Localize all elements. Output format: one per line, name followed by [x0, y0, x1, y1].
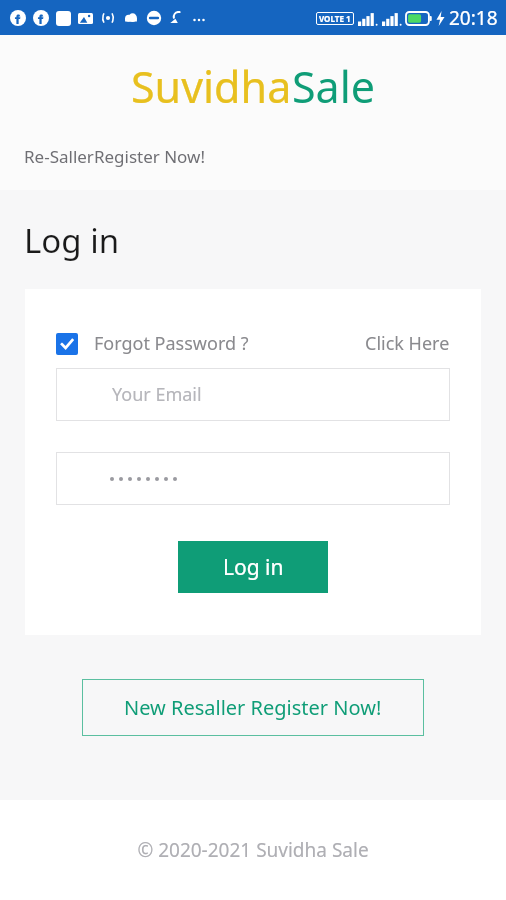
button[interactable]: New Resaller Register Now!: [82, 679, 424, 736]
staticText: Forgot Password ?: [94, 331, 249, 356]
staticText: Log in: [24, 218, 120, 263]
staticText: VOLTE 1: [319, 13, 351, 24]
button[interactable]: Log in: [178, 541, 328, 593]
staticText: Sale: [292, 57, 376, 116]
button[interactable]: Your Email: [56, 368, 450, 421]
button[interactable]: Suvidha: [131, 57, 376, 116]
staticText: New Resaller Register Now!: [124, 694, 382, 721]
button[interactable]: Forgot Password ?: [56, 331, 249, 356]
button[interactable]: Re-SallerRegister Now!: [24, 145, 205, 168]
staticText: Log in: [223, 553, 284, 582]
staticText: 20:18: [449, 5, 498, 31]
button[interactable]: Click Here: [365, 331, 450, 356]
staticText: Your Email: [112, 382, 202, 407]
staticText: © 2020-2021 Suvidha Sale: [137, 837, 369, 863]
staticText: Suvidha: [131, 57, 292, 116]
button[interactable]: [56, 452, 450, 505]
